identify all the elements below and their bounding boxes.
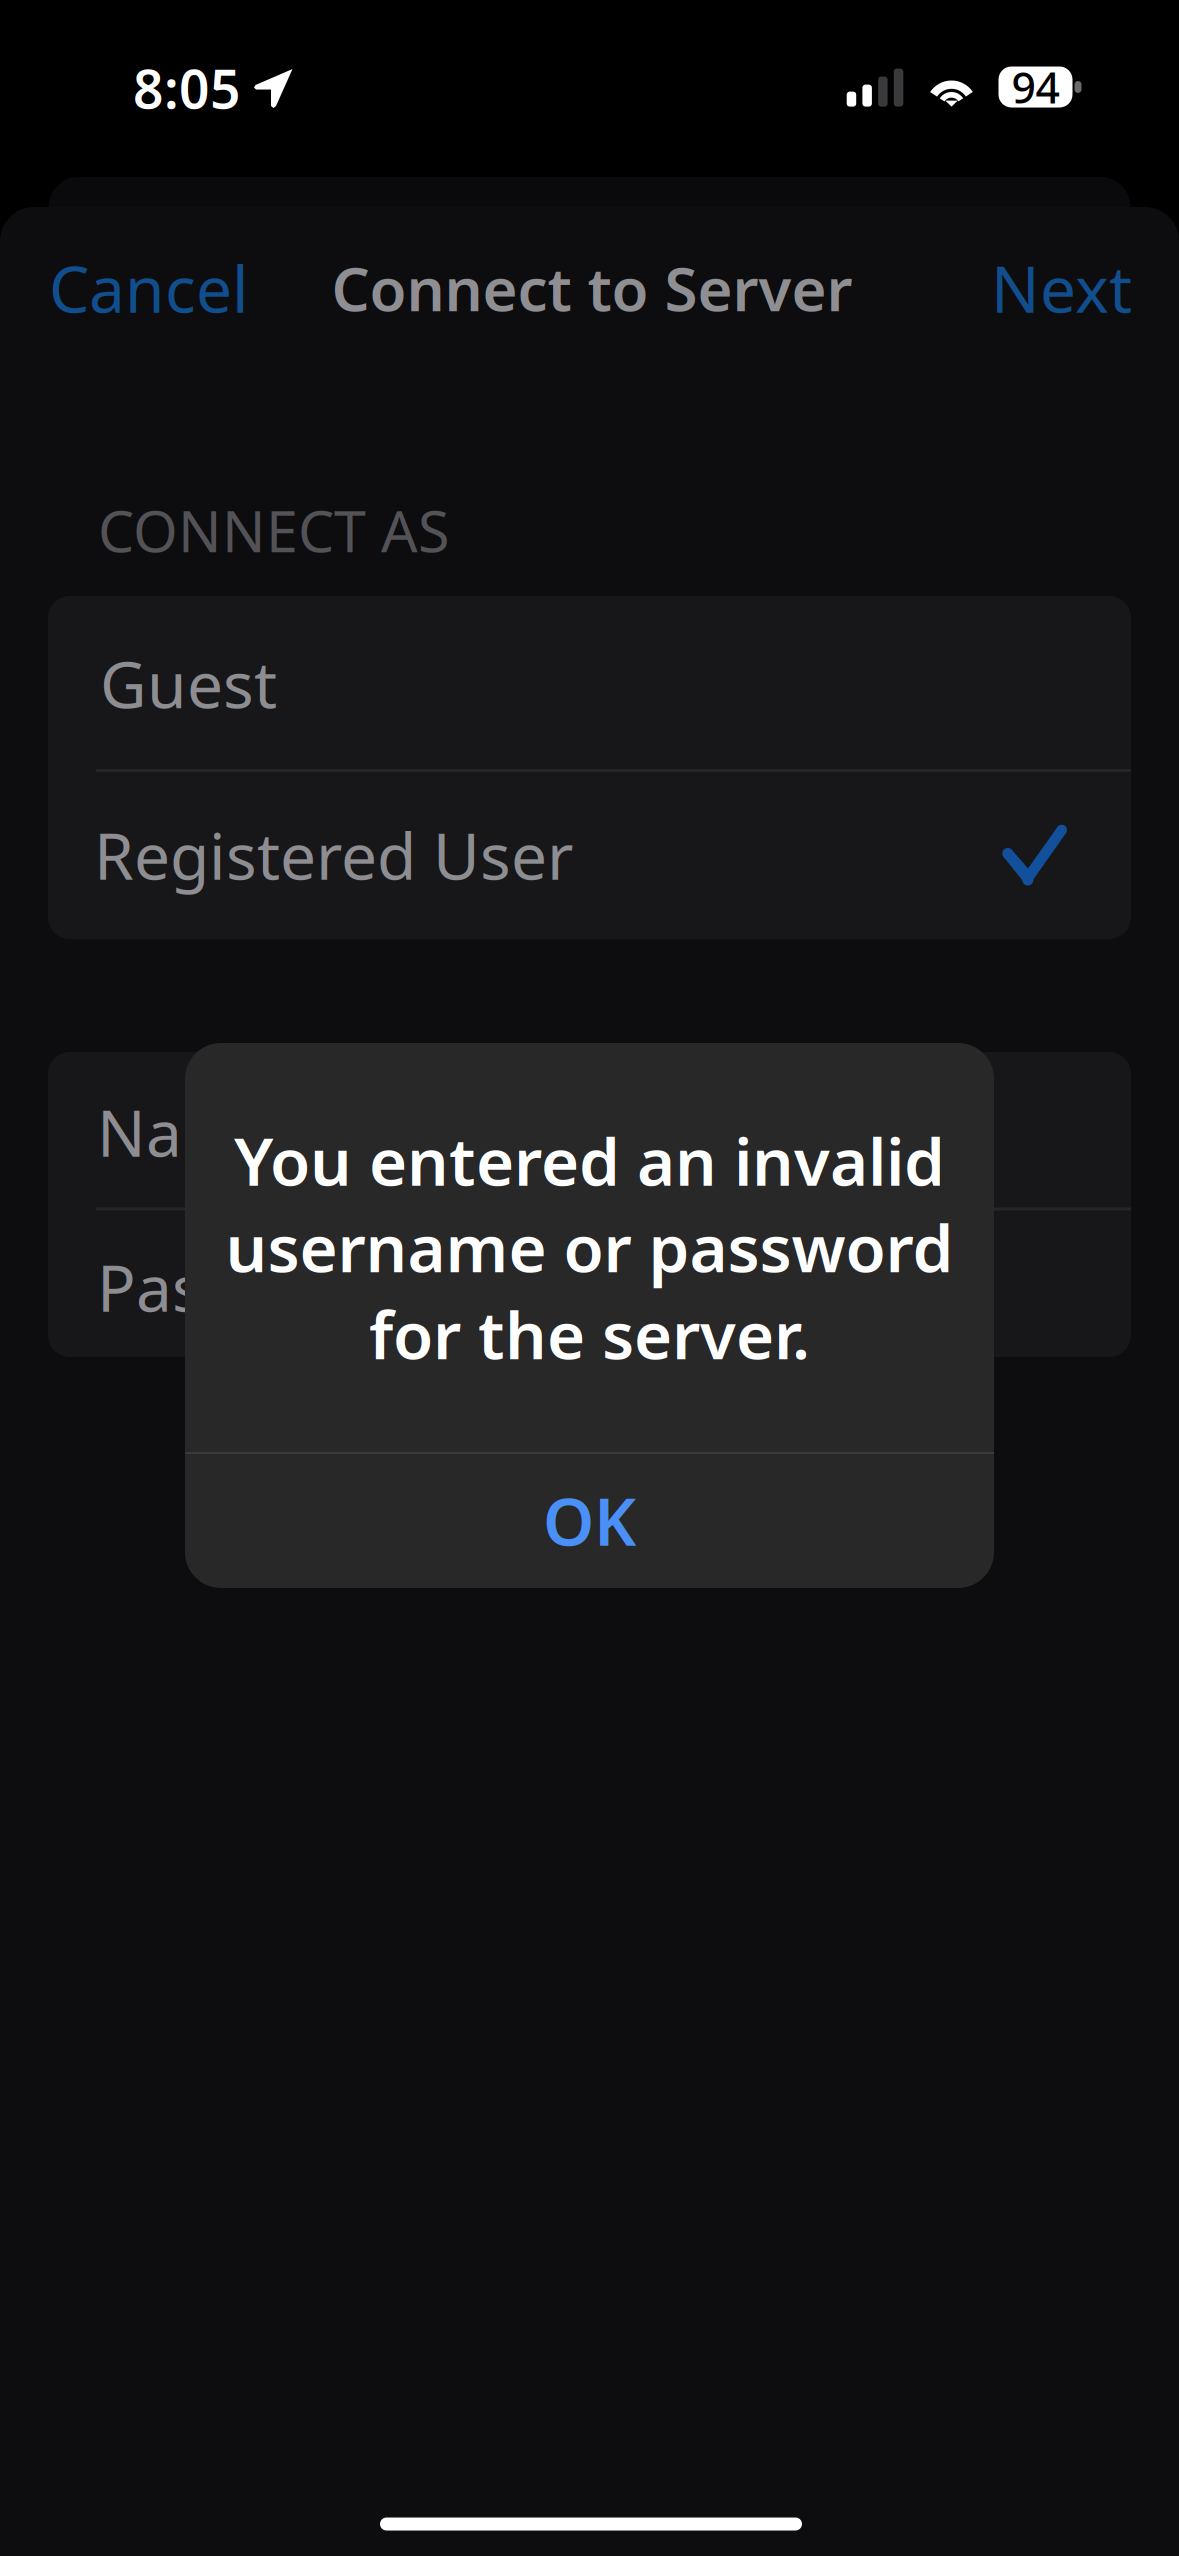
- button[interactable]: Registered User: [48, 771, 1131, 939]
- button[interactable]: Next: [924, 230, 1132, 346]
- button[interactable]: OK: [185, 1454, 994, 1587]
- staticText: Cancel: [49, 245, 249, 330]
- staticText: for the server.: [369, 1291, 810, 1377]
- staticText: username or password: [225, 1204, 953, 1290]
- staticText: OK: [543, 1477, 636, 1564]
- staticText: Password: [97, 1244, 387, 1329]
- staticText: CONNECT AS: [98, 492, 449, 568]
- staticText: Registered User: [94, 812, 573, 897]
- staticText: Guest: [100, 641, 277, 726]
- button[interactable]: Cancel: [49, 230, 287, 346]
- staticText: 8:05: [133, 53, 241, 123]
- button[interactable]: Guest: [48, 596, 1131, 771]
- staticText: Next: [991, 245, 1132, 330]
- staticText: 94: [1011, 59, 1059, 115]
- button[interactable]: Password: [48, 1209, 1131, 1357]
- staticText: Name: [97, 1089, 278, 1174]
- button[interactable]: Name: [48, 1052, 1131, 1209]
- staticText: You entered an invalid: [234, 1117, 945, 1204]
- staticText: Connect to Server: [331, 248, 852, 328]
